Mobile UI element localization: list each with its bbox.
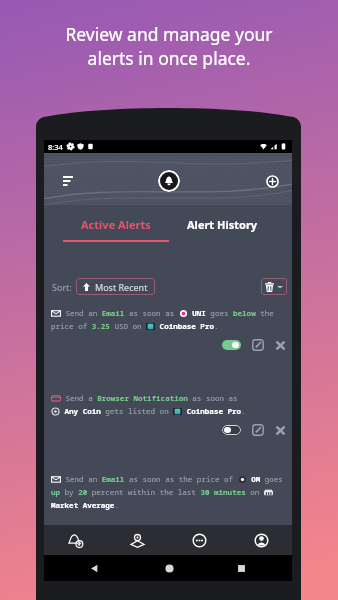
button[interactable]: ⁣ Send an Email as soon as ⁣ UNI goes be… (44, 305, 292, 390)
button[interactable]: Enable alert (222, 340, 241, 350)
button[interactable]: Alert History (169, 205, 276, 242)
button[interactable]: More (168, 525, 230, 555)
button[interactable]: Home (161, 560, 177, 576)
button[interactable]: Recents (233, 560, 249, 576)
staticText: Sort: (52, 281, 72, 293)
staticText: ⁣ Send an Email as soon as ⁣ UNI goes be… (51, 308, 283, 332)
button[interactable]: Alerts (44, 525, 106, 555)
button[interactable]: Profile (230, 525, 292, 555)
button[interactable]: ⁣ Send an Email as soon as the price of … (44, 471, 292, 517)
button[interactable]: ⁣ Send a Browser Notification as soon as… (44, 390, 292, 471)
staticText: 8:34 (48, 142, 63, 152)
button[interactable]: Edit alert (252, 339, 264, 351)
staticText: Alert History (187, 217, 258, 232)
button[interactable]: Remove alert (275, 340, 286, 351)
staticText: ⁣ Send a Browser Notification as soon as… (51, 393, 246, 417)
staticText: Active Alerts (81, 217, 151, 232)
button[interactable]: Add (263, 172, 281, 190)
button[interactable]: Edit alert (252, 424, 264, 436)
button[interactable]: Alerts (158, 170, 180, 192)
button[interactable]: Enable alert (222, 425, 241, 435)
button[interactable]: Locations (106, 525, 168, 555)
button[interactable]: Most Recent (76, 278, 155, 295)
button[interactable]: Delete selected (261, 278, 287, 295)
staticText: Most Recent (95, 281, 148, 293)
button[interactable]: Active Alerts (63, 205, 169, 242)
staticText: Review and manage your alerts in once pl… (65, 22, 273, 70)
staticText: ⁣ Send an Email as soon as the price of … (51, 474, 283, 511)
button[interactable]: Menu (58, 171, 78, 191)
button[interactable]: Remove alert (275, 425, 286, 436)
button[interactable]: Back (86, 560, 102, 576)
